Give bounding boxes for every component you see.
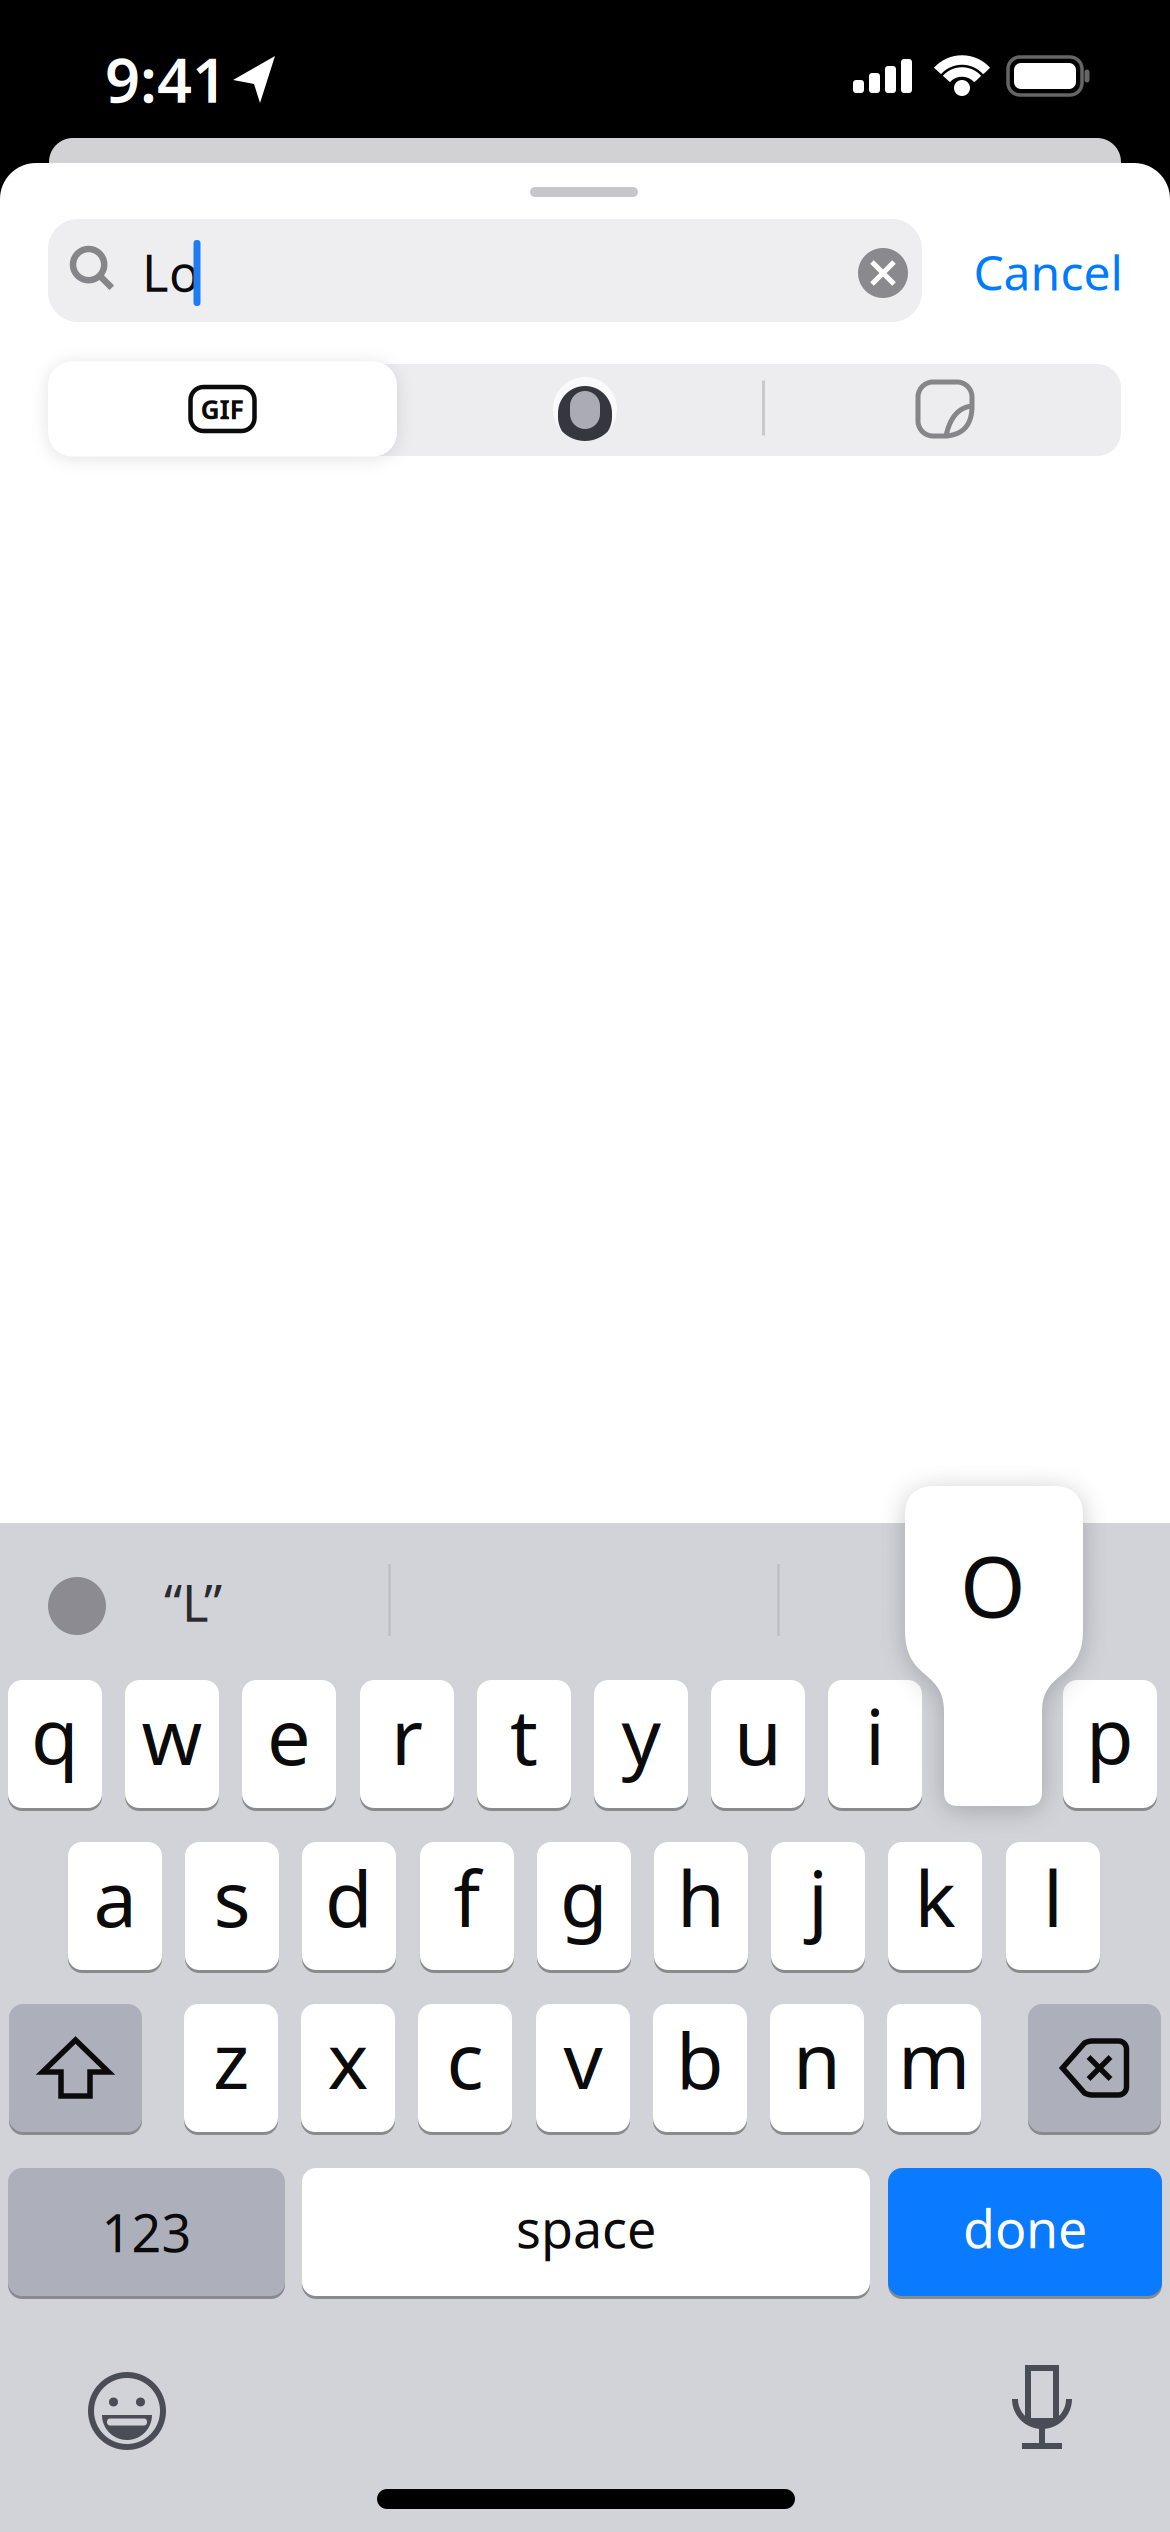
staticText: w — [141, 1684, 202, 1786]
staticText: i — [865, 1684, 885, 1786]
button[interactable]: v — [536, 2004, 630, 2132]
staticText: b — [676, 2008, 724, 2110]
button[interactable]: c — [418, 2004, 512, 2132]
staticText: 9:41 — [105, 38, 227, 120]
staticText: h — [677, 1846, 725, 1948]
staticText: s — [213, 1846, 250, 1948]
staticText: n — [793, 2008, 841, 2110]
button[interactable]: Emoji — [91, 2375, 163, 2447]
button[interactable]: u — [711, 1680, 805, 1808]
button[interactable]: Suggestion — [48, 1577, 106, 1635]
button[interactable]: e — [242, 1680, 336, 1808]
button[interactable]: w — [125, 1680, 219, 1808]
button[interactable]: k — [888, 1842, 982, 1970]
button[interactable]: l — [1006, 1842, 1100, 1970]
staticText: j — [808, 1846, 828, 1948]
button[interactable]: GIF — [48, 361, 397, 456]
staticText: x — [327, 2008, 368, 2110]
staticText: t — [510, 1684, 538, 1786]
button[interactable]: h — [654, 1842, 748, 1970]
staticText: “L” — [164, 1568, 222, 1636]
button[interactable]: Clear text — [858, 248, 908, 298]
button[interactable]: g — [537, 1842, 631, 1970]
staticText: g — [560, 1846, 608, 1948]
button[interactable]: z — [184, 2004, 278, 2132]
staticText: v — [563, 2008, 602, 2110]
button[interactable]: Memoji Stickers — [553, 377, 617, 441]
button[interactable]: r — [360, 1680, 454, 1808]
staticText: u — [734, 1684, 782, 1786]
button[interactable]: s — [185, 1842, 279, 1970]
button[interactable]: space — [302, 2168, 870, 2296]
button[interactable]: done — [888, 2168, 1162, 2296]
button[interactable]: t — [477, 1680, 571, 1808]
staticText: c — [446, 2008, 483, 2110]
staticText: GIF — [200, 391, 244, 427]
button[interactable]: o — [905, 1486, 1083, 1806]
button[interactable]: q — [8, 1680, 102, 1808]
button[interactable]: Cancel — [973, 240, 1122, 304]
staticText: k — [914, 1846, 955, 1948]
button[interactable]: i — [828, 1680, 922, 1808]
button[interactable]: 123 — [8, 2168, 285, 2296]
staticText: z — [213, 2008, 249, 2110]
button[interactable]: Shift — [9, 2004, 142, 2132]
staticText: l — [1043, 1846, 1063, 1948]
staticText: 123 — [101, 2197, 191, 2267]
button[interactable]: n — [770, 2004, 864, 2132]
button[interactable]: p — [1063, 1680, 1157, 1808]
staticText: Lo — [142, 238, 200, 306]
button[interactable]: b — [653, 2004, 747, 2132]
button[interactable]: m — [887, 2004, 981, 2132]
button[interactable]: j — [771, 1842, 865, 1970]
staticText: p — [1086, 1684, 1134, 1786]
staticText: a — [93, 1846, 136, 1948]
button[interactable]: y — [594, 1680, 688, 1808]
staticText: space — [516, 2193, 656, 2263]
staticText: r — [391, 1684, 423, 1786]
staticText: m — [898, 2008, 970, 2110]
button[interactable]: Dictation — [1015, 2368, 1069, 2446]
button[interactable]: Stickers — [918, 382, 972, 436]
button[interactable]: x — [301, 2004, 395, 2132]
button[interactable]: “L” — [164, 1568, 222, 1636]
staticText: y — [621, 1684, 660, 1786]
button[interactable]: d — [302, 1842, 396, 1970]
staticText: Cancel — [973, 240, 1122, 304]
button[interactable]: a — [68, 1842, 162, 1970]
staticText: done — [963, 2193, 1087, 2263]
button[interactable]: f — [420, 1842, 514, 1970]
staticText: d — [325, 1846, 373, 1948]
staticText: f — [453, 1846, 480, 1948]
button[interactable]: Delete — [1028, 2004, 1161, 2132]
staticText: O — [960, 1529, 1026, 1641]
staticText: e — [267, 1684, 311, 1786]
staticText: q — [31, 1684, 79, 1786]
